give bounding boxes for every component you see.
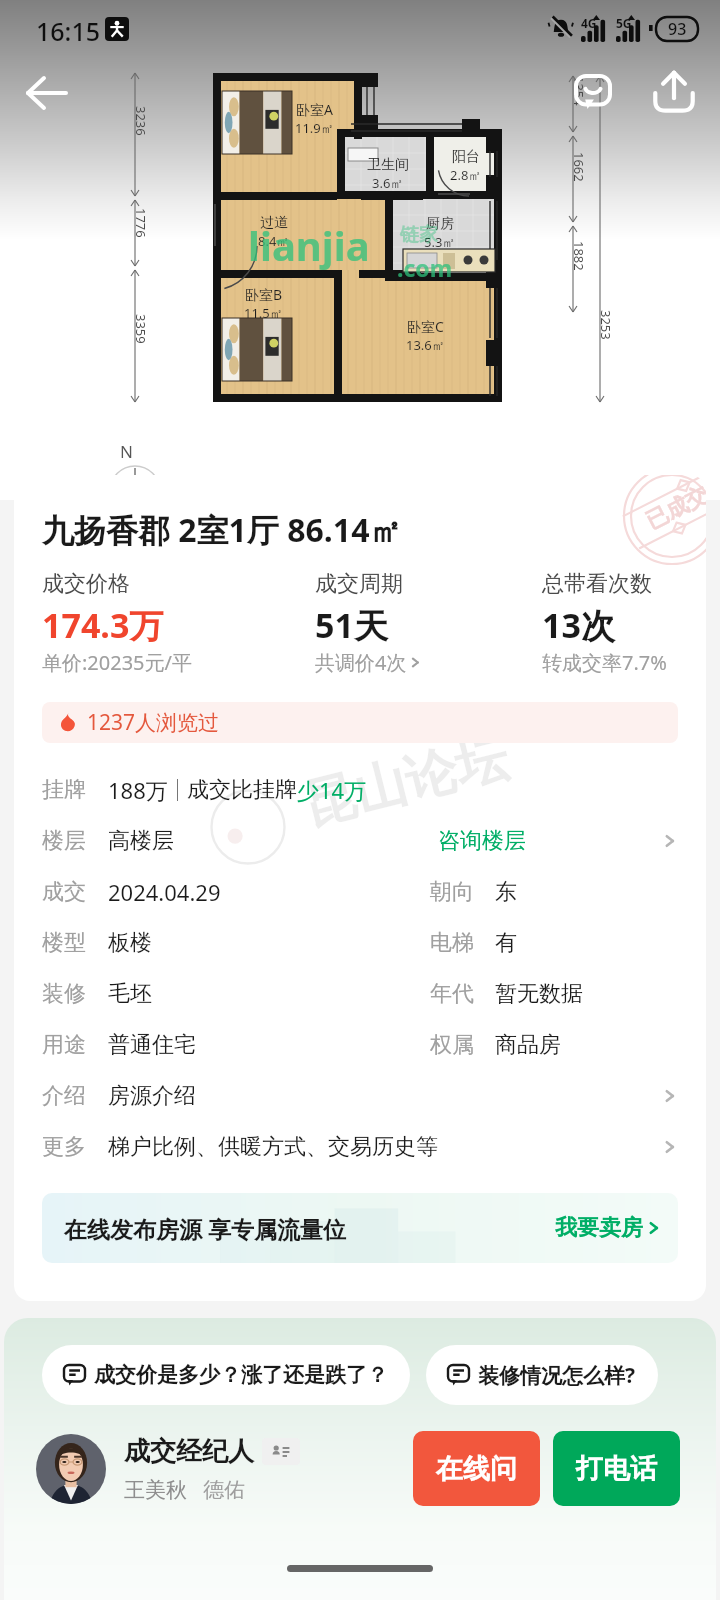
button[interactable]: 打电话	[553, 1431, 680, 1506]
staticText: 1662	[570, 152, 588, 182]
button[interactable]: 用途	[42, 1019, 678, 1070]
button[interactable]: 更多	[42, 1121, 678, 1172]
staticText: 楼层	[42, 827, 108, 855]
staticText: 装修	[42, 980, 108, 1008]
staticText: 普通住宅	[108, 1031, 430, 1059]
staticText: 单价:20235元/平	[42, 649, 192, 676]
staticText: 成交经纪人	[124, 1435, 254, 1468]
staticText: 1776	[132, 208, 150, 238]
staticText: 8.4㎡	[258, 232, 290, 250]
button[interactable]: 成交价是多少？涨了还是跌了？	[42, 1345, 410, 1405]
staticText: 卧室B	[245, 285, 283, 304]
staticText: lianjia	[248, 218, 370, 272]
staticText: 2.8㎡	[450, 166, 482, 184]
staticText: 打电话	[576, 1452, 657, 1486]
staticText: 成交	[42, 878, 108, 906]
staticText: 房源介绍	[108, 1082, 196, 1110]
staticText: 毛坯	[108, 980, 430, 1008]
staticText: 用途	[42, 1031, 108, 1059]
staticText: .com	[397, 252, 453, 283]
staticText: 介绍	[42, 1082, 108, 1110]
staticText: 174.3万	[42, 602, 164, 648]
staticText: 13.6㎡	[406, 336, 445, 354]
staticText: 3236	[132, 106, 150, 136]
button[interactable]: 介绍	[42, 1070, 678, 1121]
button[interactable]: Agent card	[262, 1438, 300, 1465]
staticText: 九扬香郡 2室1厅 86.14㎡	[42, 508, 402, 552]
staticText: 装修情况怎么样?	[478, 1361, 636, 1390]
staticText: 挂牌	[42, 776, 108, 804]
staticText: 朝向	[430, 878, 495, 906]
staticText: 暂无数据	[495, 980, 583, 1008]
staticText: 成交周期	[315, 570, 403, 598]
staticText: 5.3㎡	[424, 233, 456, 251]
staticText: 在线发布房源 享专属流量位	[64, 1213, 346, 1244]
staticText: 51天	[315, 602, 388, 648]
staticText: 高楼层	[108, 827, 174, 855]
staticText: 5G	[616, 15, 632, 31]
staticText: 东	[495, 878, 517, 906]
staticText: 转成交率7.7%	[542, 649, 667, 676]
staticText: 楼型	[42, 929, 108, 957]
button[interactable]: 在线问	[413, 1431, 540, 1506]
staticText: 成交价是多少？涨了还是跌了？	[94, 1362, 388, 1388]
button[interactable]: 装修	[42, 968, 678, 1019]
staticText: 少14万	[297, 775, 367, 805]
staticText: 昆山论坛	[297, 725, 515, 839]
staticText: N	[120, 440, 133, 463]
staticText: 11.5㎡	[244, 304, 283, 322]
staticText: 我要卖房	[555, 1214, 643, 1242]
staticText: 板楼	[108, 929, 430, 957]
staticText: 3359	[132, 314, 150, 344]
staticText: 共调价4次	[315, 649, 407, 676]
staticText: 厨房	[426, 215, 454, 233]
staticText: 3253	[597, 310, 615, 340]
staticText: 4G	[581, 15, 597, 31]
button[interactable]: Share	[648, 66, 700, 118]
staticText: 3.6㎡	[372, 174, 404, 192]
button[interactable]: 挂牌	[42, 764, 678, 815]
staticText: 卧室C	[407, 317, 444, 336]
button[interactable]: 在线发布房源 享专属流量位	[42, 1193, 678, 1263]
staticText: 咨询楼层	[438, 827, 526, 855]
staticText: 卫生间	[367, 156, 409, 174]
button[interactable]: Comment	[570, 70, 616, 116]
staticText: 在线问	[436, 1452, 517, 1486]
staticText: 1354	[570, 76, 588, 106]
staticText: 188万	[108, 775, 168, 805]
staticText: 13次	[542, 602, 615, 648]
staticText: 链家	[400, 223, 438, 247]
staticText: 11.9㎡	[295, 119, 334, 137]
staticText: 商品房	[495, 1031, 561, 1059]
staticText: 权属	[430, 1031, 495, 1059]
staticText: 总带看次数	[542, 570, 652, 598]
button[interactable]: 楼型	[42, 917, 678, 968]
staticText: 成交价格	[42, 570, 130, 598]
button[interactable]: 楼层	[42, 815, 678, 866]
staticText: 阳台	[452, 148, 480, 166]
staticText: 1882	[570, 241, 588, 271]
button[interactable]: Back	[22, 68, 72, 118]
staticText: 2024.04.29	[108, 877, 430, 907]
button[interactable]: 成交	[42, 866, 678, 917]
staticText: 德佑	[203, 1477, 245, 1503]
staticText: 更多	[42, 1133, 108, 1161]
staticText: 已成交	[641, 480, 706, 535]
staticText: 93	[668, 18, 687, 40]
staticText: 电梯	[430, 929, 495, 957]
staticText: 16:15	[36, 14, 101, 48]
staticText: 梯户比例、供暖方式、交易历史等	[108, 1133, 438, 1161]
staticText: 年代	[430, 980, 495, 1008]
button[interactable]: 装修情况怎么样?	[426, 1345, 658, 1405]
staticText: 王美秋	[124, 1477, 187, 1503]
staticText: 过道	[260, 214, 288, 232]
staticText: 1237人浏览过	[87, 708, 220, 737]
staticText: 有	[495, 929, 517, 957]
staticText: 成交比挂牌	[187, 776, 297, 804]
staticText: 卧室A	[296, 100, 333, 119]
